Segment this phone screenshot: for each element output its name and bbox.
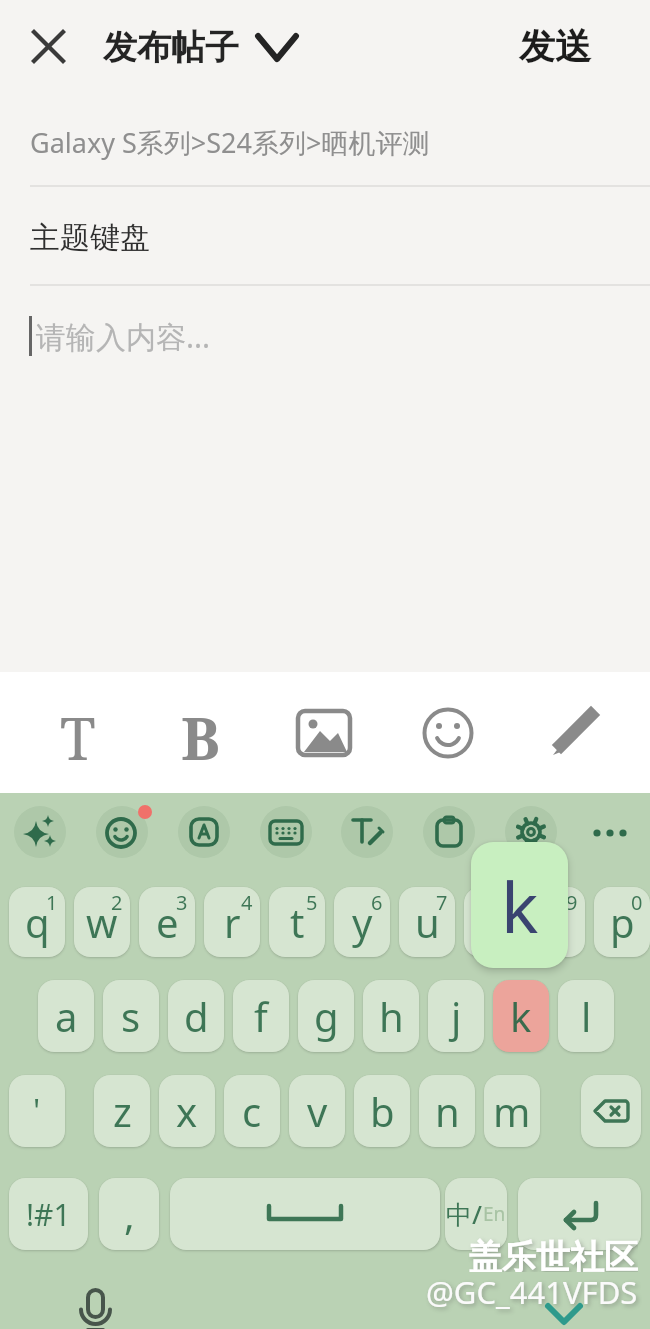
staticText: q [25, 895, 50, 949]
staticText: 2 [111, 889, 123, 916]
staticText: d [184, 989, 209, 1043]
button[interactable] [170, 1178, 440, 1250]
button[interactable]: !#1 [9, 1178, 88, 1250]
staticText: m [493, 1084, 531, 1138]
staticText: 7 [436, 889, 448, 916]
staticText: l [581, 989, 592, 1043]
staticText: 盖乐世社区 [468, 1236, 638, 1272]
button[interactable]: B [165, 698, 235, 768]
staticText: !#1 [26, 1194, 71, 1235]
staticText: 1 [46, 889, 58, 916]
button[interactable]: c [224, 1075, 280, 1147]
staticText: t [290, 895, 305, 949]
button[interactable]: t [269, 887, 325, 957]
staticText: w [86, 895, 118, 949]
button[interactable] [22, 20, 74, 72]
button[interactable]: s [103, 980, 159, 1052]
button[interactable] [14, 806, 66, 858]
button[interactable]: z [94, 1075, 150, 1147]
staticText: 发布帖子 [103, 26, 239, 69]
button[interactable]: y [334, 887, 390, 957]
staticText: 9 [566, 889, 578, 916]
staticText: r [224, 895, 241, 949]
staticText: Galaxy S系列>S24系列>晒机评测 [30, 124, 430, 161]
staticText: y [352, 895, 373, 949]
button[interactable]: ' [9, 1075, 65, 1147]
button[interactable] [290, 700, 358, 766]
staticText: 发送 [519, 24, 591, 69]
staticText: ' [33, 1089, 41, 1133]
staticText: k [501, 858, 539, 953]
staticText: En [483, 1201, 506, 1227]
staticText: 4 [241, 889, 253, 916]
staticText: c [242, 1084, 262, 1138]
staticText: B [181, 698, 220, 768]
button[interactable]: T [43, 698, 113, 768]
button[interactable] [260, 806, 312, 858]
button[interactable]: f [233, 980, 289, 1052]
staticText: x [176, 1084, 198, 1138]
button[interactable] [178, 806, 230, 858]
staticText: n [435, 1084, 460, 1138]
button[interactable]: , [99, 1178, 159, 1250]
button[interactable]: g [298, 980, 354, 1052]
button[interactable]: 发送 [505, 20, 605, 72]
button[interactable]: x [159, 1075, 215, 1147]
button[interactable] [341, 806, 393, 858]
button[interactable] [540, 700, 606, 766]
button[interactable] [518, 1178, 641, 1250]
staticText: s [121, 989, 141, 1043]
staticText: 5 [306, 889, 318, 916]
button[interactable]: i [464, 887, 520, 957]
button[interactable]: r [204, 887, 260, 957]
button[interactable]: u [399, 887, 455, 957]
button[interactable] [415, 700, 481, 766]
staticText: 中/ [446, 1196, 483, 1232]
button[interactable] [96, 806, 148, 858]
button[interactable]: a [38, 980, 94, 1052]
button[interactable]: n [419, 1075, 475, 1147]
button[interactable]: w [74, 887, 130, 957]
button[interactable] [505, 806, 557, 858]
button[interactable] [423, 806, 475, 858]
button[interactable]: p [594, 887, 650, 957]
button[interactable]: j [428, 980, 484, 1052]
button[interactable]: k [493, 980, 549, 1052]
staticText: 8 [501, 889, 513, 916]
staticText: f [254, 989, 268, 1043]
staticText: b [370, 1084, 395, 1138]
button[interactable]: l [558, 980, 614, 1052]
button[interactable]: b [354, 1075, 410, 1147]
staticText: 3 [176, 889, 188, 916]
button[interactable]: o [529, 887, 585, 957]
staticText: 主题键盘 [30, 219, 150, 257]
staticText: j [451, 989, 462, 1043]
staticText: g [314, 989, 339, 1043]
staticText: v [307, 1084, 328, 1138]
staticText: k [510, 989, 532, 1043]
button[interactable]: q [9, 887, 65, 957]
button[interactable]: e [139, 887, 195, 957]
staticText: , [124, 1187, 135, 1241]
staticText: T [60, 698, 96, 768]
staticText: o [545, 895, 570, 949]
staticText: u [415, 895, 440, 949]
staticText: z [113, 1084, 132, 1138]
button[interactable]: v [289, 1075, 345, 1147]
staticText: 0 [631, 889, 643, 916]
staticText: h [379, 989, 404, 1043]
staticText: p [610, 895, 635, 949]
staticText: 6 [371, 889, 383, 916]
button[interactable] [581, 1075, 641, 1147]
button[interactable]: m [484, 1075, 540, 1147]
staticText: 请输入内容... [36, 316, 211, 357]
staticText: a [55, 989, 78, 1043]
button[interactable] [252, 22, 302, 72]
button[interactable]: h [363, 980, 419, 1052]
button[interactable]: d [168, 980, 224, 1052]
button[interactable]: 中/ [445, 1178, 507, 1250]
staticText: @GC_441VFDS [426, 1271, 638, 1313]
staticText: e [156, 895, 179, 949]
